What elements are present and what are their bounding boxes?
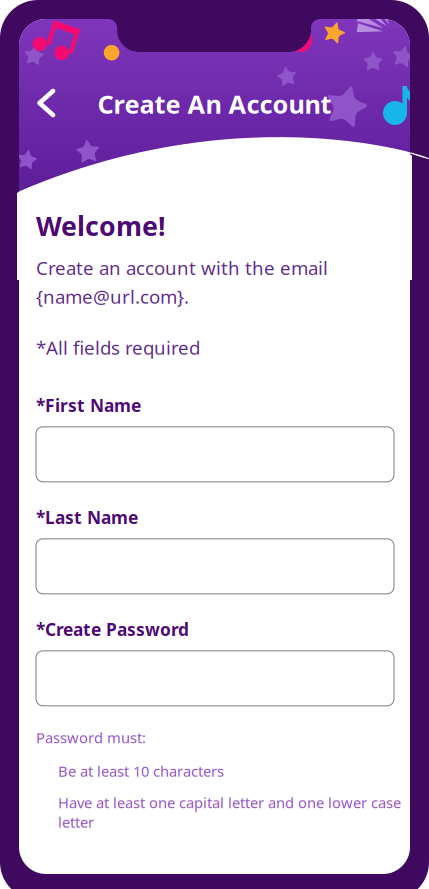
- staticText: Welcome!: [36, 208, 166, 243]
- staticText: *All fields required: [36, 335, 200, 360]
- staticText: *Last Name: [36, 506, 138, 529]
- staticText: *Create Password: [36, 618, 189, 641]
- staticText: *First Name: [36, 394, 141, 417]
- staticText: Be at least 10 characters: [58, 761, 224, 781]
- staticText: Password must:: [36, 728, 146, 747]
- staticText: Have at least one capital letter and one…: [58, 793, 401, 832]
- staticText: Create an account with the email: [36, 255, 328, 280]
- button[interactable]: [36, 539, 394, 594]
- button[interactable]: [36, 651, 394, 706]
- button[interactable]: [36, 427, 394, 482]
- staticText: Create An Account: [97, 87, 331, 121]
- staticText: {name@url.com}.: [36, 284, 189, 309]
- button[interactable]: Back: [0, 0, 429, 889]
